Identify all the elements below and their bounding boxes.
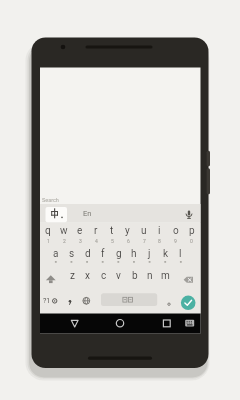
button[interactable] [182, 314, 198, 333]
staticText: f [101, 248, 105, 260]
button[interactable] [182, 206, 196, 222]
staticText: b [132, 270, 138, 282]
staticText: p [189, 225, 195, 237]
button[interactable]: v [111, 266, 126, 286]
staticText: e [77, 225, 83, 237]
button[interactable]: l [173, 244, 188, 264]
staticText: 5 [111, 238, 114, 244]
button[interactable]: c [96, 266, 111, 286]
button[interactable] [171, 290, 185, 312]
button[interactable] [181, 268, 197, 290]
button[interactable] [78, 206, 96, 222]
button[interactable]: u [136, 221, 151, 241]
staticText: v [116, 270, 121, 282]
staticText: 4 [95, 238, 98, 244]
staticText: q [45, 225, 51, 237]
staticText: j [148, 248, 151, 260]
button[interactable]: m [158, 266, 173, 286]
staticText: 0 [190, 238, 193, 244]
button[interactable]: h [126, 244, 141, 264]
staticText: k [163, 248, 169, 260]
button[interactable]: s [64, 244, 79, 264]
staticText: g [116, 248, 122, 260]
button[interactable]: a [48, 244, 63, 264]
staticText: Search [42, 197, 59, 203]
button[interactable]: ?1 [40, 293, 54, 309]
staticText: En [83, 209, 92, 218]
staticText: t [110, 225, 114, 237]
button[interactable]: x [80, 266, 95, 286]
staticText: 3 [79, 238, 82, 244]
button[interactable] [62, 290, 78, 312]
staticText: m [161, 270, 170, 282]
button[interactable] [64, 314, 86, 333]
button[interactable] [99, 292, 176, 306]
staticText: s [69, 248, 75, 260]
staticText: x [85, 270, 90, 282]
button[interactable]: d [80, 244, 95, 264]
button[interactable]: f [95, 244, 110, 264]
staticText: a [53, 248, 59, 260]
button[interactable]: r [88, 221, 103, 241]
button[interactable]: j [142, 244, 157, 264]
staticText: h [131, 248, 137, 260]
staticText: l [179, 248, 182, 260]
staticText: 9 [174, 238, 177, 244]
button[interactable]: n [142, 266, 157, 286]
staticText: c [101, 270, 107, 282]
button[interactable]: p [184, 221, 199, 241]
button[interactable]: i [152, 221, 167, 241]
button[interactable]: k [158, 244, 173, 264]
button[interactable] [77, 290, 93, 312]
staticText: u [141, 225, 147, 237]
staticText: w [60, 225, 68, 237]
staticText: y [125, 225, 130, 237]
staticText: d [85, 248, 91, 260]
staticText: 2 [63, 238, 66, 244]
button[interactable] [43, 268, 59, 290]
staticText: i [158, 225, 161, 237]
button[interactable] [46, 207, 68, 222]
staticText: 7 [143, 238, 146, 244]
staticText: r [94, 225, 98, 237]
staticText: o [173, 225, 179, 237]
button[interactable]: z [65, 266, 80, 286]
button[interactable]: b [127, 266, 142, 286]
button[interactable] [155, 314, 177, 333]
staticText: 8 [158, 238, 161, 244]
button[interactable]: o [168, 221, 183, 241]
button[interactable]: t [104, 221, 119, 241]
button[interactable]: Search [42, 195, 76, 204]
staticText: ?1 [43, 297, 51, 305]
staticText: z [70, 270, 75, 282]
staticText: 6 [127, 238, 130, 244]
button[interactable]: q [40, 221, 55, 241]
button[interactable]: g [111, 244, 126, 264]
button[interactable]: y [120, 221, 135, 241]
staticText: 1 [47, 238, 50, 244]
button[interactable] [109, 314, 131, 333]
button[interactable]: e [72, 221, 87, 241]
button[interactable]: w [56, 221, 71, 241]
button[interactable] [182, 295, 197, 310]
staticText: n [147, 270, 153, 282]
button[interactable]: En [78, 205, 96, 221]
